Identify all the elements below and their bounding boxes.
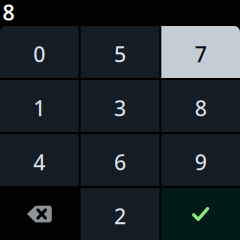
button[interactable]: 6 [81, 134, 159, 186]
staticText: 4 [33, 148, 45, 176]
staticText: 1 [33, 94, 45, 122]
staticText: 2 [114, 202, 126, 230]
staticText: 6 [114, 148, 126, 176]
staticText: 5 [114, 40, 126, 68]
button[interactable]: 4 [0, 134, 79, 186]
staticText: 9 [195, 148, 207, 176]
button[interactable]: 3 [81, 80, 159, 132]
button[interactable]: 9 [161, 134, 240, 186]
staticText: 0 [33, 40, 45, 68]
button[interactable]: 8 [161, 80, 240, 132]
button[interactable]: 2 [81, 188, 159, 240]
button[interactable]: Delete [0, 188, 79, 240]
button[interactable]: 7 [161, 26, 240, 78]
staticText: 8 [195, 94, 207, 122]
button[interactable]: 5 [81, 26, 159, 78]
button[interactable]: 0 [0, 26, 79, 78]
staticText: 3 [114, 94, 126, 122]
button[interactable]: Confirm [161, 188, 240, 240]
staticText: 8 [2, 0, 14, 26]
button[interactable]: 1 [0, 80, 79, 132]
staticText: 7 [195, 40, 207, 68]
